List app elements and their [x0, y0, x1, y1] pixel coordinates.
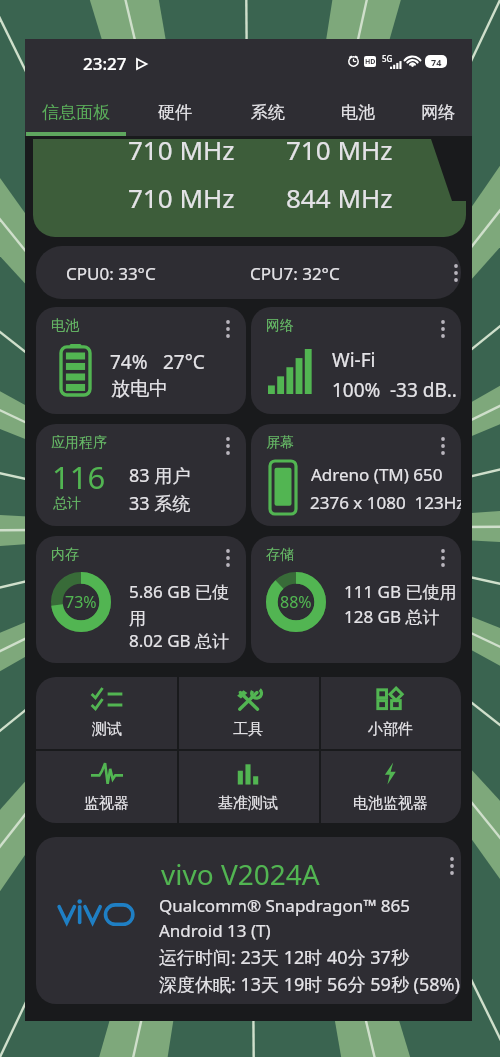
staticText: 23:27: [83, 52, 127, 75]
other: More options: [436, 549, 450, 567]
other: More options: [436, 320, 450, 338]
staticText: 基准测试: [218, 794, 278, 813]
button[interactable]: 小部件: [319, 677, 461, 749]
staticText: 5G: [382, 53, 393, 64]
staticText: 监视器: [84, 794, 129, 813]
staticText: 83 用户: [129, 463, 191, 488]
staticText: 网络: [266, 317, 294, 335]
staticText: 总计: [53, 495, 81, 513]
staticText: 2376 x 1080 123Hz: [310, 491, 461, 514]
button[interactable]: 硬件: [126, 88, 223, 136]
staticText: 内存: [51, 546, 79, 564]
button[interactable]: 测试: [36, 677, 177, 749]
other: More options: [449, 264, 461, 282]
button[interactable]: 电池: [313, 88, 403, 136]
staticText: 深度休眠: 13天 19时 56分 59秒 (58%): [159, 972, 460, 997]
staticText: 100%: [332, 377, 381, 403]
button[interactable]: 电池监视器: [319, 751, 461, 823]
button[interactable]: 工具: [177, 677, 319, 749]
staticText: 8.02 GB 总计: [129, 629, 229, 652]
staticText: 74: [431, 56, 442, 68]
staticText: Android 13 (T): [159, 919, 271, 942]
staticText: 屏幕: [266, 434, 294, 452]
other: More options: [221, 437, 235, 455]
staticText: Qualcomm® Snapdragon™ 865: [159, 894, 410, 917]
staticText: 33 系统: [129, 491, 191, 516]
button[interactable]: 网络: [403, 88, 472, 136]
other: More options: [221, 549, 235, 567]
staticText: 网络: [421, 102, 455, 123]
other: More options: [445, 857, 459, 875]
staticText: -33 dB..: [390, 377, 457, 403]
staticText: 27°C: [163, 349, 205, 375]
staticText: 710 MHz: [128, 132, 235, 167]
staticText: 88%: [280, 591, 312, 613]
staticText: 应用程序: [51, 434, 107, 452]
staticText: HD: [365, 57, 376, 67]
staticText: 74%: [110, 349, 148, 375]
staticText: 信息面板: [42, 102, 110, 123]
button[interactable]: 基准测试: [177, 751, 319, 823]
staticText: 存储: [266, 546, 294, 564]
staticText: 运行时间: 23天 12时 40分 37秒: [159, 945, 409, 970]
staticText: 放电中: [111, 377, 168, 401]
staticText: CPU0: 33°C: [66, 262, 156, 285]
staticText: 116: [52, 456, 106, 498]
staticText: 710 MHz: [128, 180, 235, 215]
staticText: 5.86 GB 已使 用: [129, 580, 229, 629]
button[interactable]: 存储: [251, 536, 461, 663]
other: More options: [221, 320, 235, 338]
button[interactable]: 电池: [36, 307, 246, 414]
button[interactable]: 应用程序: [36, 424, 246, 526]
staticText: 710 MHz: [286, 132, 393, 167]
button[interactable]: 屏幕: [251, 424, 461, 526]
staticText: 电池: [51, 317, 79, 335]
button[interactable]: CPU0: 33°C: [36, 246, 461, 299]
button[interactable]: 内存: [36, 536, 246, 663]
staticText: 工具: [233, 720, 263, 739]
staticText: 测试: [92, 720, 122, 739]
button[interactable]: 信息面板: [26, 88, 126, 136]
staticText: 硬件: [158, 102, 192, 123]
staticText: 73%: [65, 591, 97, 613]
staticText: Adreno (TM) 650: [311, 463, 443, 486]
button[interactable]: 网络: [251, 307, 461, 414]
staticText: 电池: [341, 102, 375, 123]
other: More options: [436, 437, 450, 455]
staticText: 111 GB 已使用: [344, 580, 457, 603]
staticText: CPU7: 32°C: [250, 262, 340, 285]
staticText: 系统: [251, 102, 285, 123]
staticText: 844 MHz: [286, 180, 393, 215]
button[interactable]: 系统: [223, 88, 313, 136]
staticText: 小部件: [368, 720, 413, 739]
staticText: vivo V2024A: [161, 855, 320, 893]
staticText: Wi-Fi: [332, 347, 376, 373]
button[interactable]: More options: [36, 837, 461, 1004]
staticText: 电池监视器: [353, 794, 428, 813]
button[interactable]: 监视器: [36, 751, 177, 823]
staticText: 128 GB 总计: [344, 605, 440, 628]
